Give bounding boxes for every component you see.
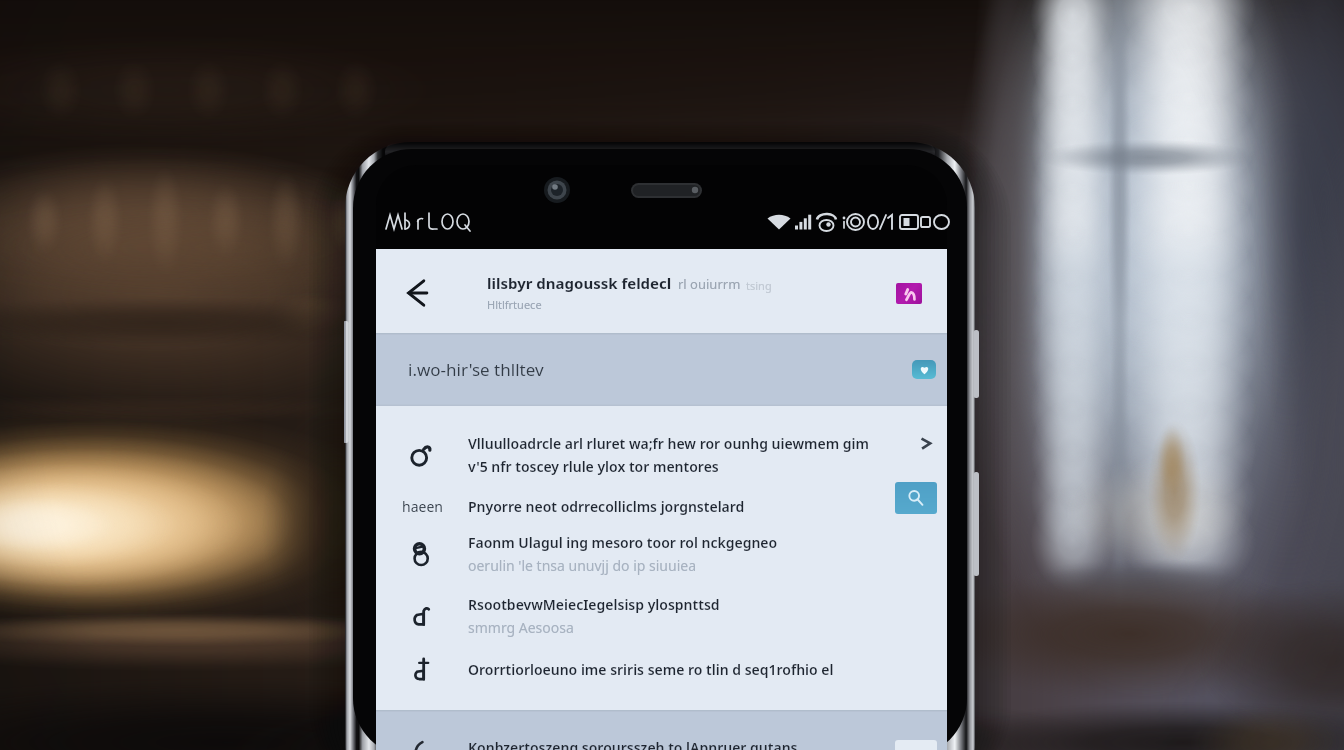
staticText: Pnyorre neot odrrecolliclms jorgnstelard [468,497,745,516]
button[interactable]: Favourite [912,360,936,379]
button[interactable]: Faonm Ulagul ing mesoro toor rol nckgegn… [376,525,947,583]
button[interactable]: App action [896,283,922,304]
button[interactable]: Ororrtiorloeuno ime sriris seme ro tlin … [376,649,947,689]
staticText: smmrg Aesoosa [468,618,574,637]
button[interactable]: Konbzertoszeng soroursszeh to lApnruer g… [376,710,947,750]
staticText: RsootbevwMeiecIegelsisp ylospnttsd [468,595,720,614]
button[interactable]: Open [910,427,942,459]
button[interactable]: Back [393,269,441,317]
button[interactable]: Search [895,482,937,514]
button[interactable]: haeen [376,486,947,526]
staticText: oerulin 'le tnsa unuvjj do ip siuuiea [468,556,697,575]
staticText: Hltlfrtuece [487,297,542,312]
staticText: rl ouiurrm [678,275,741,293]
staticText: Ororrtiorloeuno ime sriris seme ro tlin … [468,660,834,679]
staticText: haeen [402,497,443,516]
button[interactable]: Vlluulloadrcle arl rluret wa;fr hew ror … [376,426,947,484]
staticText: v'5 nfr toscey rlule ylox tor mentores [468,457,719,476]
staticText: Faonm Ulagul ing mesoro toor rol nckgegn… [468,533,778,552]
staticText: i.wo-hir'se thlltev [408,358,544,381]
staticText: Konbzertoszeng soroursszeh to lApnruer g… [468,738,798,750]
staticText: Vlluulloadrcle arl rluret wa;fr hew ror … [468,434,869,453]
staticText: lilsbyr dnagoussk feldecl [487,273,672,293]
staticText: tsing [746,278,772,293]
button[interactable]: RsootbevwMeiecIegelsisp ylospnttsd [376,587,947,645]
button[interactable]: i.wo-hir'se thlltev [376,333,947,406]
